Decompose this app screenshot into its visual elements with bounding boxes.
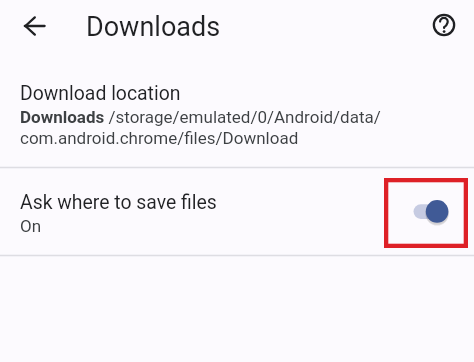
button[interactable]: Download location (0, 60, 474, 167)
staticText: Downloads (86, 11, 221, 43)
button[interactable]: Ask where to save files (0, 168, 474, 255)
staticText: Ask where to save files (20, 191, 217, 214)
button[interactable]: Ask where to save files, on (404, 192, 454, 232)
staticText: Download location (20, 82, 181, 105)
button[interactable]: Help and feedback (420, 1, 468, 49)
staticText: Downloads /storage/emulated/0/Android/da… (20, 107, 474, 148)
button[interactable]: Navigate up (11, 2, 59, 50)
staticText: On (20, 216, 42, 236)
